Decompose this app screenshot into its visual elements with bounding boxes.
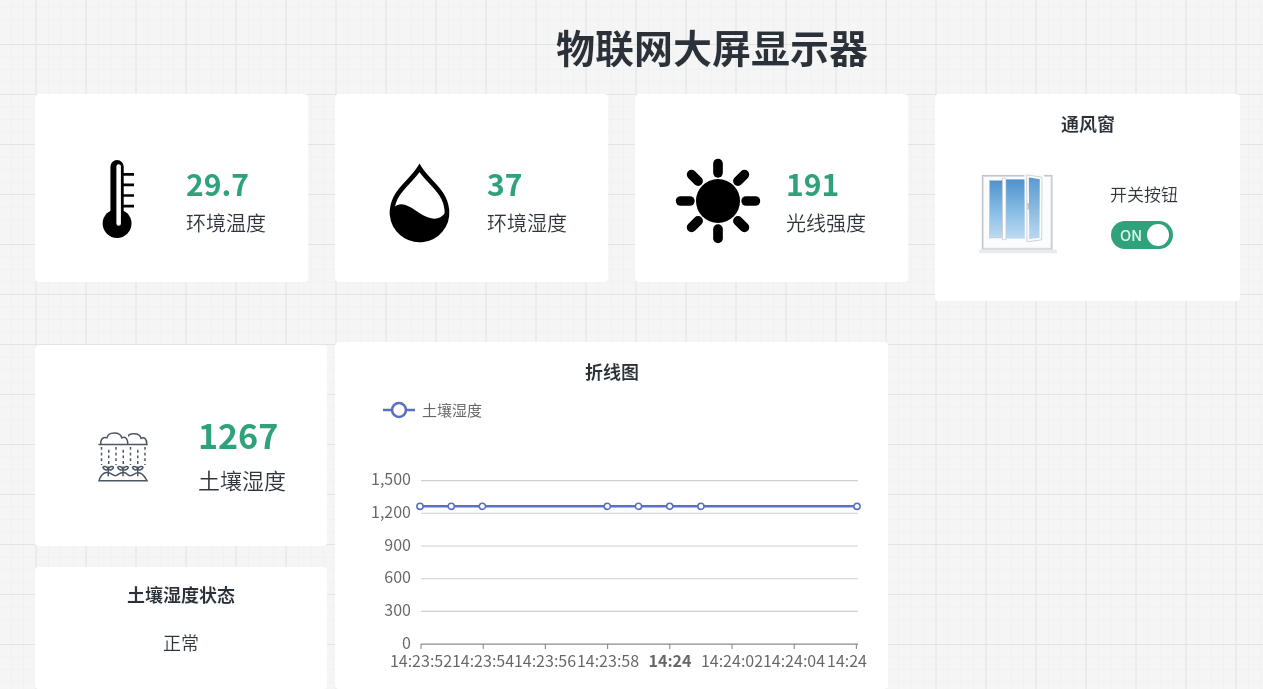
staticText: 1,200 xyxy=(371,499,411,522)
staticText: 900 xyxy=(384,532,411,555)
staticText: 14:23:56 xyxy=(500,648,590,671)
staticText: 开关按钮 xyxy=(1110,181,1178,206)
button[interactable]: 土壤湿度状态 正常 xyxy=(35,567,327,689)
staticText: 14:23:54 xyxy=(438,648,528,671)
staticText: 环境湿度 xyxy=(487,208,567,237)
staticText: 300 xyxy=(384,597,411,620)
staticText: 14:23:52 xyxy=(376,648,466,671)
staticText: 14:24:04 xyxy=(749,648,839,671)
staticText: 0 xyxy=(402,630,411,653)
staticText: 物联网大屏显示器 xyxy=(556,18,869,74)
staticText: 1,500 xyxy=(371,466,411,489)
button[interactable]: 环境温度 29.7 xyxy=(35,94,308,282)
staticText: 通风窗 xyxy=(1061,110,1115,136)
staticText: ON xyxy=(1120,224,1142,246)
staticText: 土壤湿度 xyxy=(422,399,483,421)
staticText: 14:23:58 xyxy=(563,648,653,671)
staticText: 环境温度 xyxy=(186,208,266,237)
staticText: 正常 xyxy=(163,629,199,655)
button[interactable]: 光线强度 191 xyxy=(635,94,908,282)
staticText: 29.7 xyxy=(186,161,249,204)
button[interactable]: 土壤湿度 1267 xyxy=(35,345,327,546)
staticText: 光线强度 xyxy=(786,208,866,237)
staticText: 14:24:02 xyxy=(687,648,777,671)
staticText: 600 xyxy=(384,564,411,587)
staticText: 土壤湿度 xyxy=(198,463,287,495)
staticText: 37 xyxy=(487,161,523,204)
staticText: 1267 xyxy=(198,410,279,459)
button[interactable]: 通风窗 xyxy=(935,94,1240,301)
button[interactable]: 折线图 xyxy=(335,342,888,689)
staticText: 土壤湿度状态 xyxy=(127,581,235,607)
button[interactable]: 环境湿度 37 xyxy=(335,94,608,282)
staticText: 14:24 xyxy=(625,648,715,671)
staticText: 折线图 xyxy=(585,358,639,384)
staticText: 14:24 xyxy=(802,648,888,671)
button[interactable]: 开关按钮 ON xyxy=(1111,221,1173,249)
staticText: 191 xyxy=(786,161,840,204)
